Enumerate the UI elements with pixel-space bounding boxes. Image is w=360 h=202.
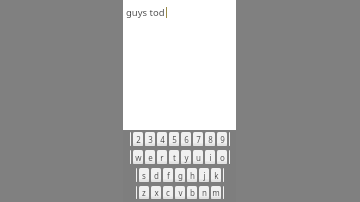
button[interactable]: 6 [181,132,191,146]
button[interactable]: m [211,186,221,199]
staticText: guys tod [126,6,165,19]
staticText: x [154,187,159,198]
staticText: 3 [148,134,153,145]
button[interactable]: w [133,150,143,164]
button[interactable]: x [151,186,161,199]
button[interactable]: 2 [133,132,143,146]
staticText: w [135,152,142,163]
button[interactable]: of this [123,0,236,130]
staticText: 4 [160,134,165,145]
button[interactable]: j [199,168,209,182]
staticText: r [160,152,164,163]
staticText: i [209,152,212,163]
button[interactable]: Key [130,150,131,164]
button[interactable]: d [151,168,161,182]
button[interactable]: Key [229,132,230,146]
button[interactable]: f [163,168,173,182]
button[interactable]: Key [130,132,131,146]
staticText: u [196,152,201,163]
button[interactable]: Key [229,150,230,164]
staticText: b [190,187,195,198]
staticText: j [203,170,206,181]
staticText: k [214,170,219,181]
button[interactable]: 5 [169,132,179,146]
button[interactable]: k [211,168,221,182]
staticText: d [154,170,159,181]
button[interactable]: n [199,186,209,199]
button[interactable]: b [187,186,197,199]
button[interactable]: 3 [145,132,155,146]
button[interactable]: 9 [217,132,227,146]
staticText: 5 [172,134,177,145]
button[interactable]: Key [223,186,224,199]
button[interactable]: Key [136,168,137,182]
staticText: e [148,152,153,163]
staticText: m [212,187,220,198]
button[interactable]: y [181,150,191,164]
button[interactable]: t [169,150,179,164]
button[interactable]: c [163,186,173,199]
staticText: t [173,152,176,163]
button[interactable]: 4 [157,132,167,146]
button[interactable]: v [175,186,185,199]
staticText: c [166,187,170,198]
button[interactable]: 8 [205,132,215,146]
staticText: 9 [220,134,225,145]
button[interactable]: Key [136,186,137,199]
staticText: 8 [208,134,213,145]
button[interactable]: i [205,150,215,164]
button[interactable]: Key [223,168,224,182]
staticText: v [178,187,183,198]
button[interactable]: s [139,168,149,182]
staticText: z [142,187,146,198]
button[interactable]: o [217,150,227,164]
staticText: g [178,170,183,181]
staticText: 6 [184,134,189,145]
staticText: n [202,187,207,198]
button[interactable]: 7 [193,132,203,146]
button[interactable]: r [157,150,167,164]
button[interactable]: u [193,150,203,164]
staticText: 7 [196,134,201,145]
staticText: s [142,170,146,181]
staticText: f [167,170,170,181]
button[interactable]: z [139,186,149,199]
staticText: h [190,170,195,181]
staticText: o [220,152,225,163]
button[interactable]: e [145,150,155,164]
staticText: 2 [136,134,141,145]
button[interactable]: h [187,168,197,182]
staticText: y [184,152,189,163]
button[interactable]: g [175,168,185,182]
